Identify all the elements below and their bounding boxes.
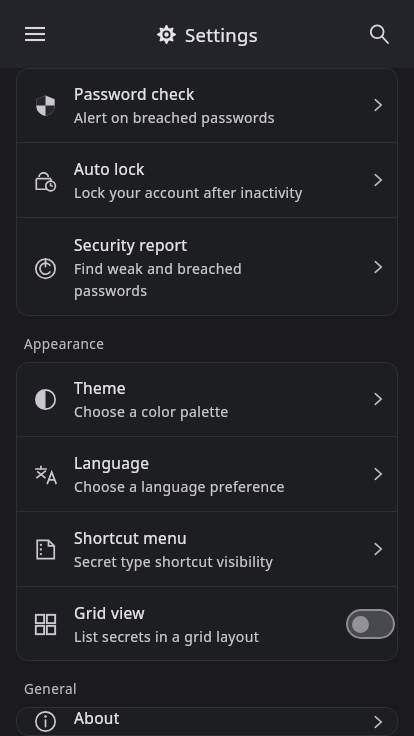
staticText: Theme xyxy=(74,377,126,398)
staticText: Grid view xyxy=(74,602,145,623)
button[interactable]: Grid view xyxy=(16,587,398,661)
button[interactable]: Grid view toggle xyxy=(342,604,398,644)
staticText: Choose a color palette xyxy=(74,402,229,421)
button[interactable]: About xyxy=(16,707,398,736)
staticText: Security report xyxy=(74,234,188,255)
staticText: Secret type shortcut visibility xyxy=(74,552,273,571)
staticText: Shortcut menu xyxy=(74,527,188,548)
staticText: General xyxy=(24,680,77,698)
button[interactable]: Security report xyxy=(16,218,398,316)
staticText: Language xyxy=(74,452,150,473)
button[interactable]: Search xyxy=(362,17,396,51)
button[interactable]: Menu xyxy=(18,17,52,51)
staticText: Settings xyxy=(185,22,258,47)
staticText: Appearance xyxy=(24,335,105,353)
staticText: Password check xyxy=(74,83,195,104)
button[interactable]: Auto lock xyxy=(16,143,398,217)
staticText: Alert on breached passwords xyxy=(74,108,275,127)
button[interactable]: Shortcut menu xyxy=(16,512,398,586)
button[interactable]: Language xyxy=(16,437,398,511)
staticText: Find weak and breached xyxy=(74,259,242,278)
button[interactable]: Theme xyxy=(16,362,398,436)
staticText: Auto lock xyxy=(74,158,145,179)
staticText: passwords xyxy=(74,281,148,300)
staticText: Choose a language preference xyxy=(74,477,285,496)
staticText: About xyxy=(74,707,120,728)
staticText: Lock your account after inactivity xyxy=(74,183,303,202)
button[interactable]: Password check xyxy=(16,68,398,142)
staticText: List secrets in a grid layout xyxy=(74,627,260,646)
staticText: Version and licenses xyxy=(74,732,215,736)
